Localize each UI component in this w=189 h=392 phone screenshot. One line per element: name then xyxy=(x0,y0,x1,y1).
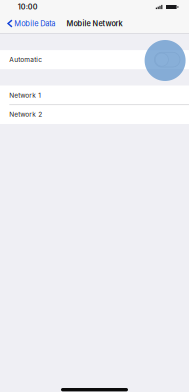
staticText: Automatic xyxy=(9,56,42,64)
staticText: Network 1 xyxy=(9,91,41,99)
button[interactable]: Network 1 xyxy=(0,86,189,105)
staticText: Mobile Network xyxy=(66,19,122,28)
button[interactable]: Automatic xyxy=(0,50,189,69)
staticText: 10:00 xyxy=(18,3,38,11)
staticText: Network 2 xyxy=(9,110,42,118)
button[interactable]: Mobile Data xyxy=(0,14,59,33)
button[interactable]: Network 2 xyxy=(0,105,189,124)
staticText: Mobile Data xyxy=(14,19,55,28)
